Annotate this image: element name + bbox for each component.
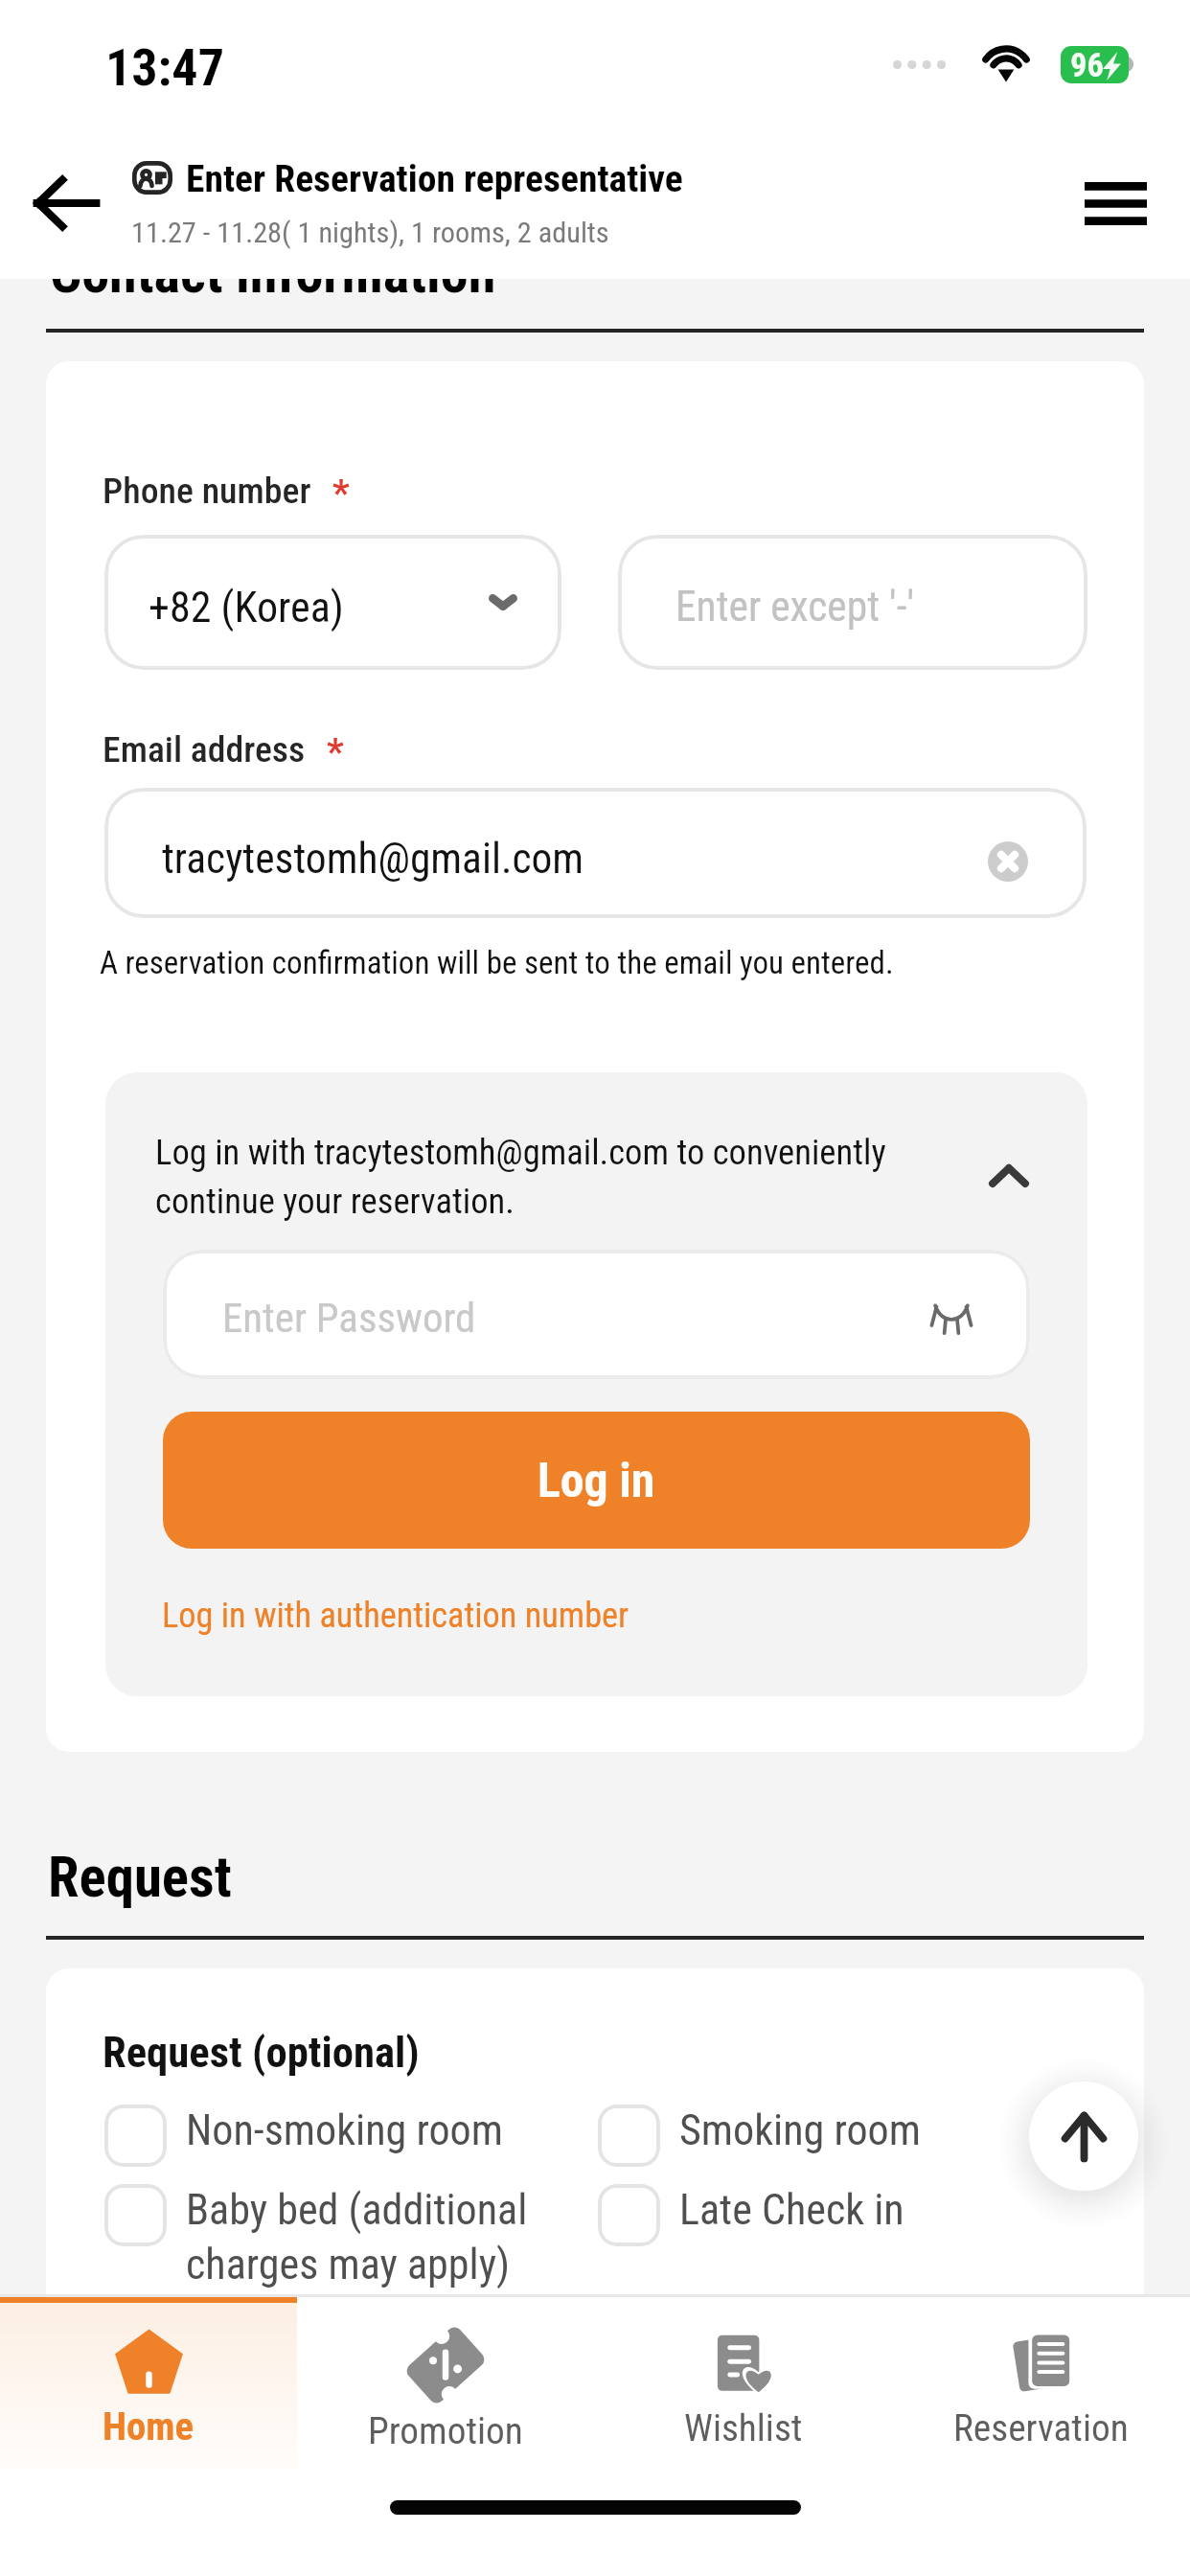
staticText: Smoking room bbox=[679, 2105, 921, 2155]
button[interactable]: Smoking room bbox=[598, 2104, 921, 2167]
staticText: Promotion bbox=[368, 2409, 523, 2453]
staticText: 13:47 bbox=[105, 37, 224, 98]
staticText: +82 (Korea) bbox=[149, 583, 344, 632]
staticText: Non-smoking room bbox=[186, 2105, 503, 2155]
staticText: Enter Password bbox=[222, 1294, 476, 1342]
staticText: Late Check in bbox=[679, 2185, 904, 2235]
staticText: * bbox=[332, 471, 350, 516]
staticText: Contact information bbox=[50, 279, 496, 306]
staticText: Log in with authentication number bbox=[162, 1595, 629, 1636]
staticText: Wishlist bbox=[684, 2406, 803, 2450]
button[interactable]: Menu bbox=[1064, 151, 1167, 255]
staticText: Enter Reservation representative bbox=[186, 156, 683, 200]
button[interactable]: tracytestomh@gmail.com bbox=[104, 788, 1087, 918]
button[interactable]: Enter Password bbox=[163, 1250, 1030, 1379]
button[interactable]: Late Check in bbox=[598, 2184, 904, 2246]
staticText: Enter except '-' bbox=[675, 583, 915, 632]
button[interactable]: +82 (Korea) bbox=[104, 535, 561, 670]
staticText: * bbox=[327, 730, 344, 774]
button[interactable]: Collapse bbox=[972, 1138, 1046, 1213]
staticText: tracytestomh@gmail.com bbox=[162, 835, 584, 884]
staticText: Log in with tracytestomh@gmail.com to co… bbox=[155, 1132, 886, 1222]
button[interactable]: Home bbox=[0, 2303, 297, 2469]
button[interactable]: Log in bbox=[163, 1412, 1030, 1549]
button[interactable]: Promotion bbox=[297, 2303, 594, 2469]
staticText: Email address bbox=[103, 728, 306, 770]
staticText: Baby bed (additional charges may apply) bbox=[186, 2185, 528, 2288]
button[interactable]: Wishlist bbox=[594, 2303, 892, 2469]
staticText: Request (optional) bbox=[103, 2028, 420, 2078]
button[interactable]: Log in with authentication number bbox=[162, 1595, 629, 1636]
button[interactable]: Baby bed (additional charges may apply) bbox=[104, 2184, 528, 2288]
staticText: Log in bbox=[538, 1453, 655, 1508]
staticText: 96 bbox=[1070, 46, 1104, 83]
staticText: 11.27 - 11.28( 1 nights), 1 rooms, 2 adu… bbox=[131, 216, 609, 250]
staticText: Home bbox=[103, 2403, 195, 2449]
button[interactable]: Reservation bbox=[892, 2303, 1190, 2469]
staticText: Phone number bbox=[103, 470, 311, 512]
staticText: A reservation confirmation will be sent … bbox=[100, 944, 894, 981]
button[interactable]: Non-smoking room bbox=[104, 2104, 503, 2167]
staticText: Request bbox=[48, 1844, 232, 1910]
button[interactable]: Back bbox=[17, 154, 115, 252]
button[interactable]: Enter except '-' bbox=[618, 535, 1087, 670]
staticText: Reservation bbox=[953, 2406, 1129, 2450]
button[interactable]: Scroll to top bbox=[1029, 2081, 1138, 2191]
button[interactable]: Clear bbox=[988, 841, 1028, 882]
